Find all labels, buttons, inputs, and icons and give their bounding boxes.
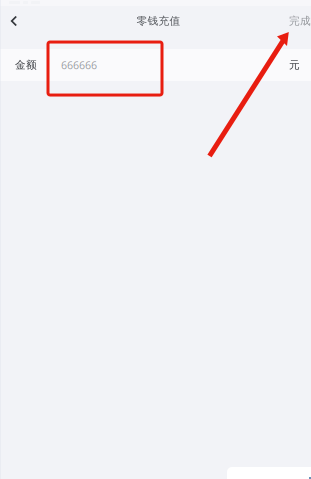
button[interactable]: 完成 [289,4,311,38]
staticText: 金额 [15,58,37,71]
button[interactable]: 666666 [37,49,289,81]
staticText: 元 [289,58,300,71]
staticText: 零钱充值 [136,14,180,27]
staticText: 666666 [61,58,97,72]
button[interactable]: Back [0,4,28,38]
staticText: 完成 [289,14,311,27]
